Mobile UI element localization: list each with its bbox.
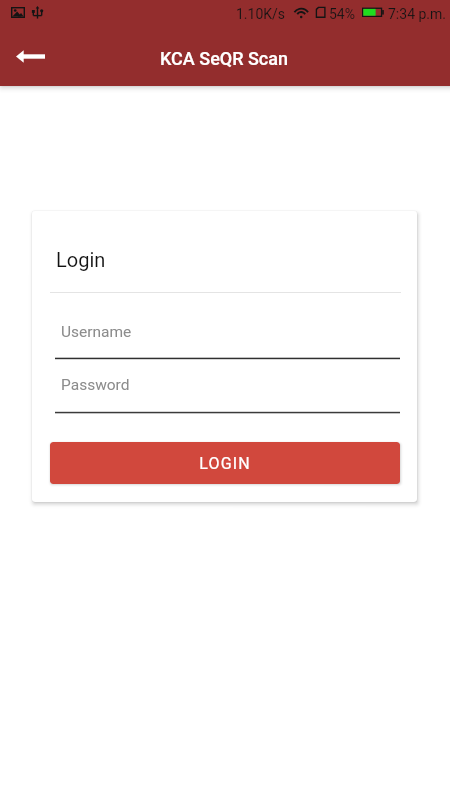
staticText: LOGIN: [199, 454, 251, 473]
button[interactable]: LOGIN: [50, 442, 400, 484]
staticText: 1.10K/s: [236, 6, 286, 22]
staticText: Password: [61, 376, 130, 394]
staticText: 54%: [329, 6, 355, 22]
staticText: Username: [61, 323, 132, 341]
staticText: 7:34 p.m.: [388, 6, 446, 22]
staticText: KCA SeQR Scan: [160, 48, 289, 69]
staticText: Login: [56, 248, 106, 271]
button[interactable]: Back: [10, 37, 50, 77]
